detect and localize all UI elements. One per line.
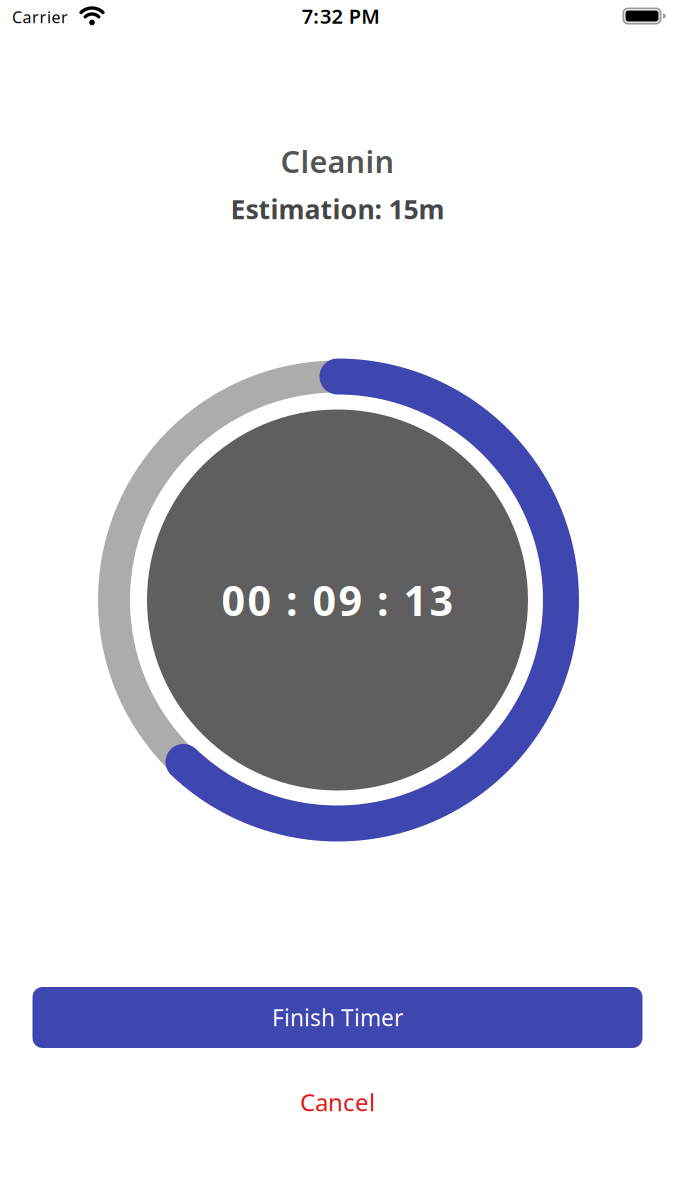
button[interactable]: Cancel [300,1086,375,1118]
staticText: 00 : 09 : 13 [222,573,453,627]
staticText: Cleanin [280,141,394,181]
staticText: Estimation: 15m [230,191,444,227]
staticText: Finish Timer [272,1002,403,1032]
staticText: Carrier [12,6,68,28]
staticText: 7:32 PM [302,3,380,29]
staticText: Cancel [300,1086,375,1118]
button[interactable]: Finish Timer [32,987,642,1048]
